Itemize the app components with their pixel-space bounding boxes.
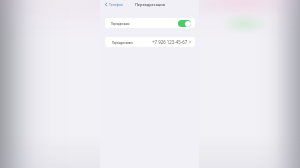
- staticText: Переадресация: [135, 2, 165, 7]
- button[interactable]: Переадресация: [105, 18, 195, 28]
- staticText: Переадресовать: [112, 40, 133, 45]
- staticText: Переадресация: [111, 21, 130, 25]
- staticText: Телефон: [109, 2, 124, 7]
- staticText: +7 926 123-45-67: [152, 39, 188, 45]
- button[interactable]: Call forwarding switch: [178, 20, 191, 27]
- button[interactable]: Телефон: [104, 0, 125, 9]
- button[interactable]: Переадресовать: [105, 37, 195, 47]
